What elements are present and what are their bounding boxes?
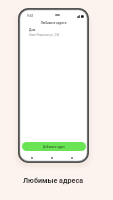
staticText: 9:41 (27, 14, 34, 18)
staticText: Любимые адреса (19, 21, 88, 25)
button[interactable]: Добавить адрес (22, 142, 86, 151)
button[interactable]: Дом (19, 28, 88, 36)
staticText: Ново-Тверская ул., 234 (29, 33, 60, 36)
staticText: Добавить адрес (43, 145, 66, 148)
staticText: Дом (29, 28, 36, 32)
staticText: Любимые адреса (0, 176, 106, 184)
